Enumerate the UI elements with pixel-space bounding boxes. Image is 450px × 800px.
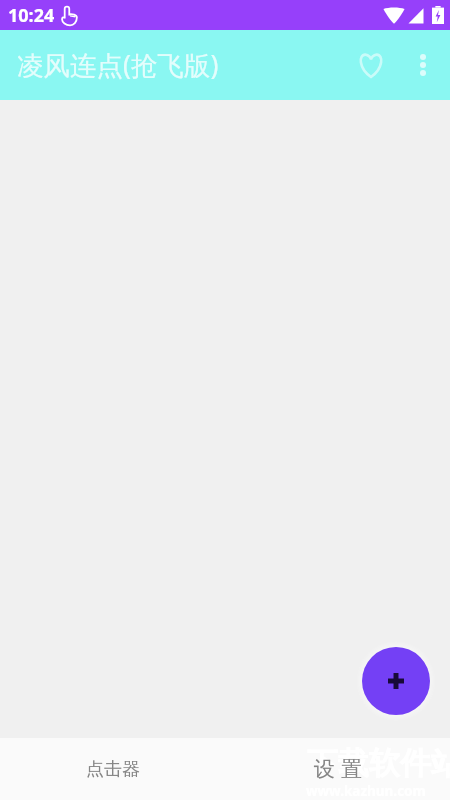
button[interactable]: More options xyxy=(399,41,447,89)
staticText: 10:24 xyxy=(8,3,55,28)
button[interactable]: 点击器 xyxy=(0,738,225,800)
button[interactable]: Add xyxy=(362,647,430,715)
staticText: 设置 xyxy=(311,756,365,782)
staticText: 点击器 xyxy=(86,758,140,781)
staticText: 凌风连点(抢飞版) xyxy=(17,47,219,83)
staticText: 下载软件站 xyxy=(307,744,450,783)
button[interactable]: 设置 xyxy=(225,738,450,800)
button[interactable]: Favorite xyxy=(347,41,395,89)
